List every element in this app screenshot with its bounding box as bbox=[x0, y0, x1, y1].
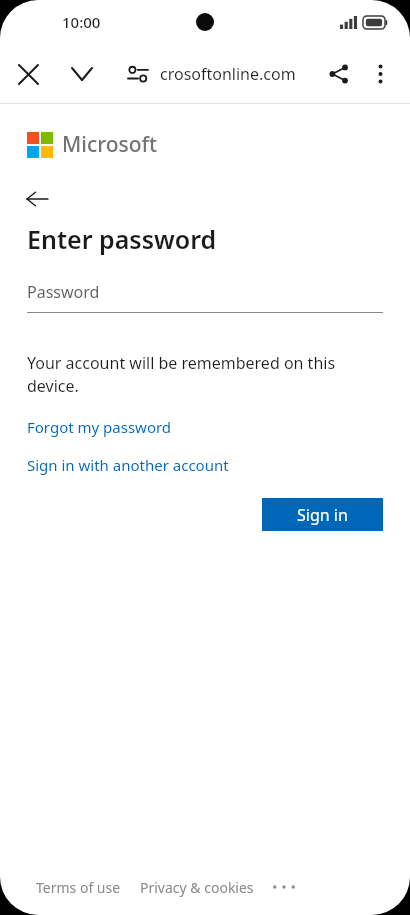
staticText: Privacy & cookies bbox=[140, 878, 254, 897]
staticText: Forgot my password bbox=[27, 417, 172, 437]
button[interactable]: More options bbox=[360, 54, 400, 94]
button[interactable]: Sign in with another account bbox=[27, 455, 229, 475]
staticText: 10:00 bbox=[62, 12, 101, 32]
staticText: Microsoft bbox=[62, 130, 158, 159]
button[interactable]: Password bbox=[27, 281, 383, 313]
button[interactable]: Close bbox=[8, 54, 48, 94]
staticText: Password bbox=[27, 281, 100, 303]
button[interactable]: Expand bbox=[62, 54, 102, 94]
button[interactable]: Privacy & cookies bbox=[140, 878, 254, 897]
button[interactable]: Back bbox=[27, 188, 57, 210]
button[interactable]: crosoftonline.com bbox=[160, 54, 318, 94]
staticText: Sign in with another account bbox=[27, 455, 229, 475]
staticText: Enter password bbox=[27, 222, 217, 256]
staticText: crosoftonline.com bbox=[160, 63, 296, 85]
staticText: Terms of use bbox=[36, 878, 121, 897]
staticText: Your account will be remembered on this … bbox=[27, 352, 383, 397]
button[interactable]: Share bbox=[318, 53, 360, 95]
button[interactable]: More bbox=[271, 876, 297, 898]
button[interactable]: Terms of use bbox=[36, 878, 121, 897]
staticText: Sign in bbox=[297, 504, 348, 526]
button[interactable]: Forgot my password bbox=[27, 417, 172, 437]
button[interactable]: Page info bbox=[120, 56, 156, 92]
button[interactable]: Sign in bbox=[262, 498, 383, 531]
